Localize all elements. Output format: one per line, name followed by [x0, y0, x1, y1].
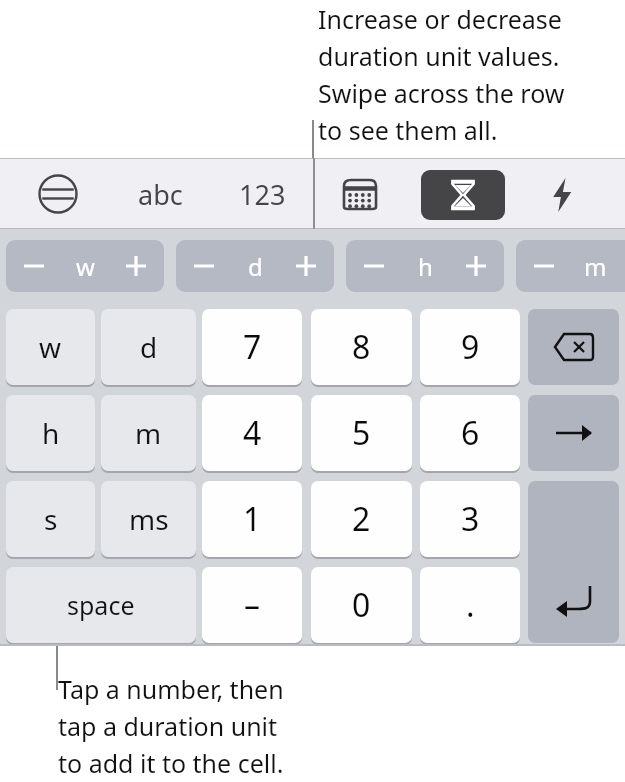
staticText: 2 [352, 497, 371, 541]
staticText: 1 [243, 497, 262, 541]
staticText: d [140, 328, 158, 366]
button[interactable]: 7 [202, 309, 302, 385]
staticText: s [44, 500, 58, 538]
staticText: ms [129, 500, 169, 538]
staticText: Swipe across the row [318, 76, 565, 110]
button[interactable]: Date [336, 172, 384, 216]
staticText: 5 [352, 411, 371, 455]
button[interactable]: 5 [311, 395, 412, 471]
button[interactable]: Delete [528, 309, 619, 385]
staticText: 4 [243, 411, 262, 455]
staticText: 123 [239, 176, 286, 213]
button[interactable]: d [101, 309, 196, 385]
staticText: 0 [352, 583, 371, 627]
button[interactable]: ms [101, 481, 196, 557]
staticText: to add it to the cell. [58, 746, 284, 780]
button[interactable]: Next [528, 395, 619, 471]
staticText: m [584, 250, 607, 283]
button[interactable]: 1 [202, 481, 302, 557]
staticText: h [418, 250, 433, 283]
button[interactable]: 4 [202, 395, 302, 471]
staticText: Tap a number, then [58, 672, 284, 706]
button[interactable]: 123 [224, 172, 300, 216]
staticText: 6 [461, 411, 480, 455]
button[interactable]: Shortcut [536, 170, 588, 220]
button[interactable]: 8 [311, 309, 412, 385]
staticText: – [244, 583, 261, 627]
staticText: abc [138, 176, 183, 213]
button[interactable]: Duration [421, 170, 505, 220]
staticText: Increase or decrease [318, 2, 562, 36]
button[interactable]: m [101, 395, 196, 471]
button[interactable]: d [176, 240, 334, 292]
button[interactable]: Return [528, 481, 619, 643]
button[interactable]: space [6, 567, 196, 643]
button[interactable]: 6 [420, 395, 520, 471]
button[interactable]: abc [124, 172, 196, 216]
button[interactable]: s [6, 481, 95, 557]
staticText: w [39, 328, 62, 366]
staticText: 7 [243, 325, 262, 369]
button[interactable]: – [202, 567, 302, 643]
button[interactable]: 9 [420, 309, 520, 385]
staticText: 9 [461, 325, 480, 369]
staticText: 3 [461, 497, 480, 541]
button[interactable]: 3 [420, 481, 520, 557]
button[interactable]: h [346, 240, 504, 292]
staticText: d [248, 250, 263, 283]
button[interactable]: 2 [311, 481, 412, 557]
staticText: w [76, 250, 95, 283]
button[interactable]: w [6, 309, 95, 385]
staticText: 8 [352, 325, 371, 369]
button[interactable]: w [6, 240, 164, 292]
button[interactable]: m [516, 240, 625, 292]
staticText: h [42, 414, 60, 452]
staticText: to see them all. [318, 113, 498, 147]
staticText: tap a duration unit [58, 709, 278, 743]
button[interactable]: Formula [36, 172, 80, 216]
button[interactable]: 0 [311, 567, 412, 643]
staticText: m [135, 414, 162, 452]
staticText: duration unit values. [318, 39, 560, 73]
staticText: space [67, 588, 135, 622]
staticText: . [466, 583, 475, 627]
button[interactable]: . [420, 567, 520, 643]
button[interactable]: h [6, 395, 95, 471]
